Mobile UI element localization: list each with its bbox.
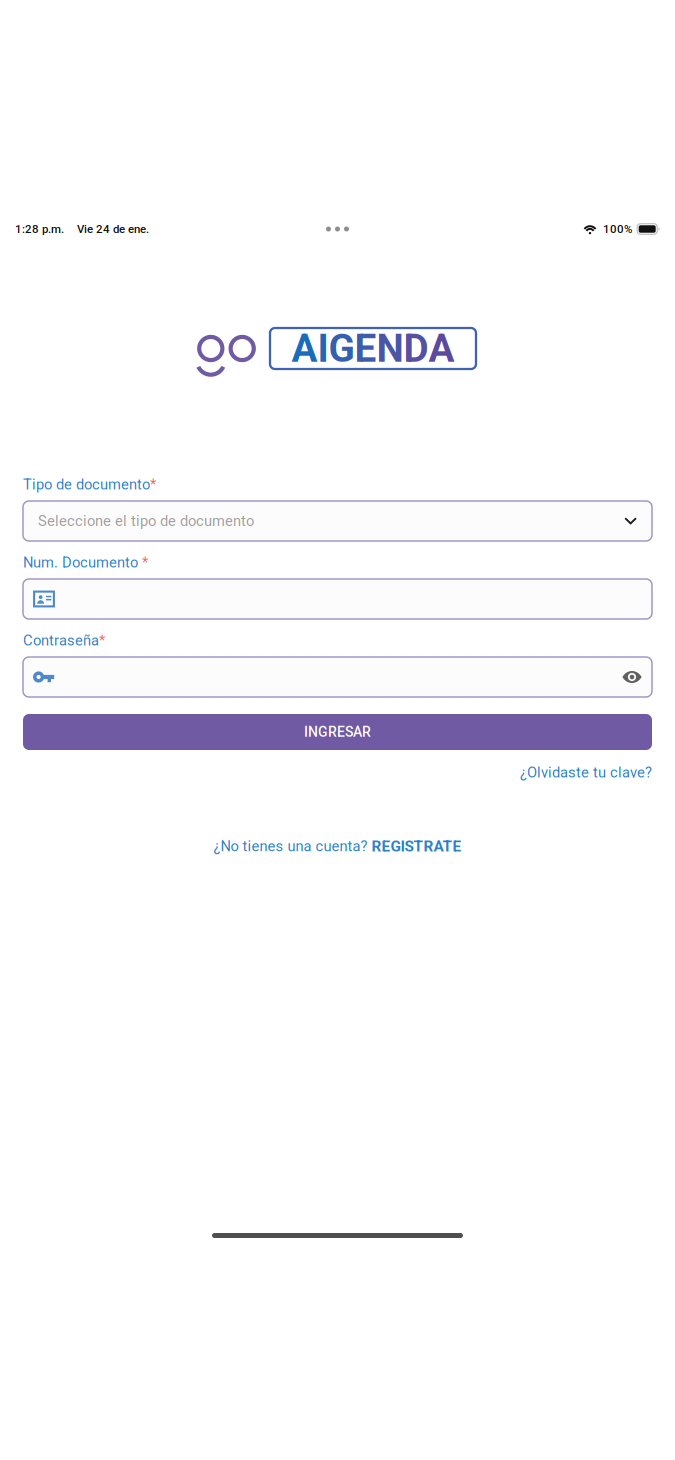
staticText: Num. Documento	[23, 554, 138, 571]
button[interactable]: ¿No tienes una cuenta?	[213, 834, 461, 858]
staticText: ¿No tienes una cuenta?	[213, 838, 367, 855]
button[interactable]	[23, 579, 652, 619]
staticText: *	[142, 554, 148, 571]
staticText: ¿Olvidaste tu clave?	[520, 764, 652, 781]
button[interactable]: Seleccione el tipo de documento	[23, 501, 652, 541]
staticText: D	[403, 326, 428, 371]
staticText: N	[376, 326, 403, 371]
staticText: *	[99, 632, 105, 649]
staticText: INGRESAR	[304, 724, 371, 740]
staticText: *	[150, 476, 156, 493]
button[interactable]	[23, 657, 652, 697]
staticText: A	[428, 326, 454, 371]
staticText: 100%	[603, 222, 632, 236]
staticText: Tipo de documento	[23, 476, 150, 493]
staticText: Contraseña	[23, 632, 99, 649]
staticText: REGISTRATE	[371, 837, 461, 855]
staticText: A	[291, 326, 317, 371]
staticText: Seleccione el tipo de documento	[38, 512, 254, 530]
staticText: E	[354, 326, 376, 371]
staticText: Vie 24 de ene.	[77, 222, 149, 236]
staticText: G	[328, 326, 354, 371]
button[interactable]: INGRESAR	[23, 714, 652, 750]
button[interactable]: ¿Olvidaste tu clave?	[520, 761, 652, 784]
staticText: I	[317, 326, 328, 371]
staticText: 1:28 p.m.	[15, 222, 64, 236]
